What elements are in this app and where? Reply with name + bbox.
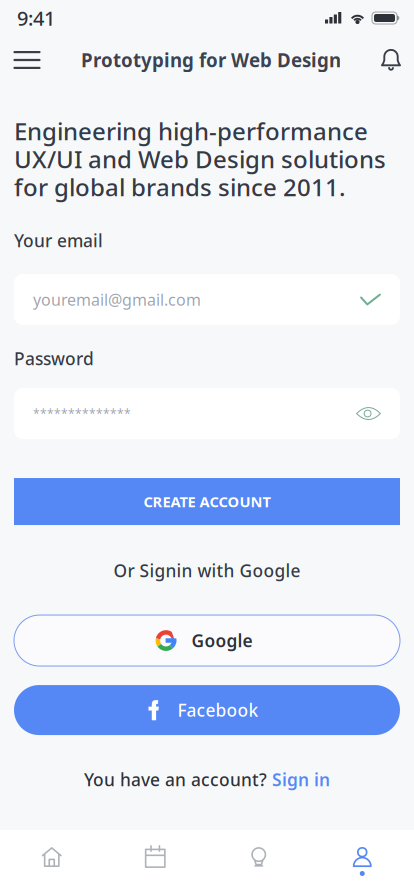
staticText: ************** <box>33 406 131 421</box>
button[interactable]: Calendar <box>103 830 207 896</box>
staticText: Password <box>14 347 94 370</box>
button[interactable]: Menu <box>5 38 49 82</box>
button[interactable]: Ideas <box>207 830 310 896</box>
staticText: Engineering high-performance <box>14 115 368 147</box>
button[interactable]: Facebook <box>14 685 400 735</box>
staticText: youremail@gmail.com <box>33 289 201 310</box>
staticText: UX/UI and Web Design solutions <box>14 143 386 175</box>
staticText: Sign in <box>272 768 330 791</box>
staticText: Your email <box>14 229 103 252</box>
staticText: 9:41 <box>17 5 55 31</box>
staticText: for global brands since 2011. <box>14 171 346 203</box>
button[interactable]: CREATE ACCOUNT <box>14 478 400 525</box>
button[interactable]: Google <box>14 615 400 666</box>
staticText: Or Signin with Google <box>113 559 300 582</box>
button[interactable]: Notifications <box>373 38 409 82</box>
button[interactable]: Profile <box>310 830 414 896</box>
staticText: Facebook <box>177 698 258 721</box>
staticText: Google <box>191 629 252 652</box>
button[interactable]: Sign in <box>272 768 330 791</box>
staticText: You have an account? <box>84 768 272 791</box>
staticText: CREATE ACCOUNT <box>143 492 270 511</box>
button[interactable]: Home <box>0 830 103 896</box>
staticText: Prototyping for Web Design <box>81 48 341 72</box>
